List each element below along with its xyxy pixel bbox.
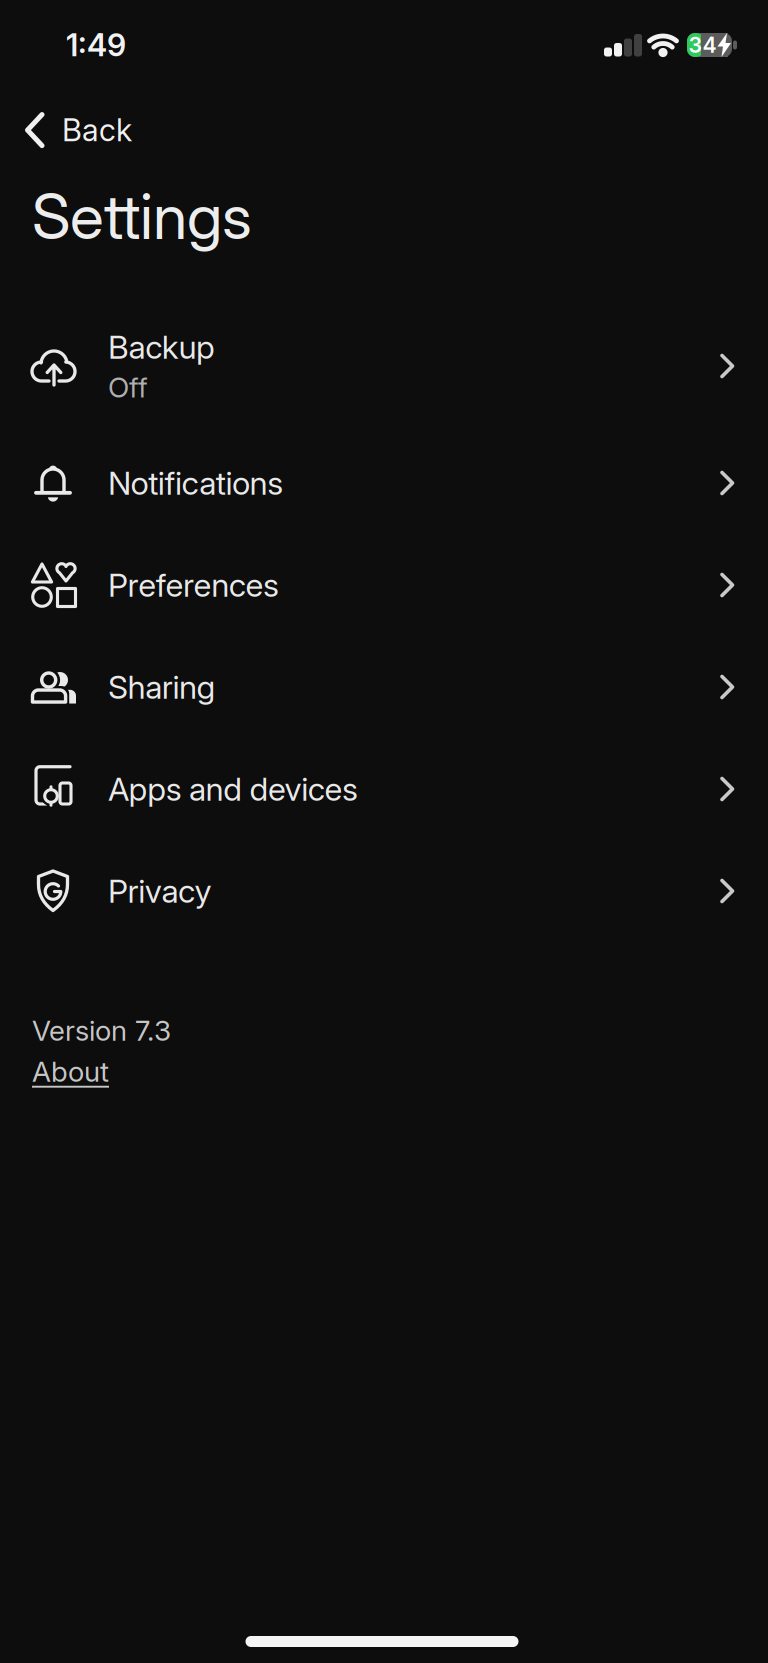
- button[interactable]: Apps and devices: [0, 738, 768, 840]
- staticText: Notifications: [108, 464, 283, 502]
- staticText: Version 7.3: [32, 1014, 171, 1047]
- staticText: 1:49: [66, 27, 126, 63]
- staticText: Privacy: [108, 872, 212, 910]
- button[interactable]: Preferences: [0, 534, 768, 636]
- staticText: Apps and devices: [108, 770, 358, 808]
- button[interactable]: Sharing: [0, 636, 768, 738]
- button[interactable]: Notifications: [0, 432, 768, 534]
- staticText: Sharing: [108, 668, 216, 706]
- button[interactable]: Privacy: [0, 840, 768, 942]
- button[interactable]: About: [0, 1055, 109, 1088]
- staticText: About: [32, 1055, 109, 1088]
- staticText: Back: [62, 112, 132, 148]
- staticText: 34: [688, 32, 716, 58]
- button[interactable]: Backup: [0, 300, 768, 432]
- staticText: Backup: [108, 328, 215, 366]
- staticText: Preferences: [108, 566, 279, 604]
- staticText: Off: [108, 371, 148, 404]
- button[interactable]: Back: [0, 112, 132, 148]
- staticText: Settings: [32, 178, 252, 254]
